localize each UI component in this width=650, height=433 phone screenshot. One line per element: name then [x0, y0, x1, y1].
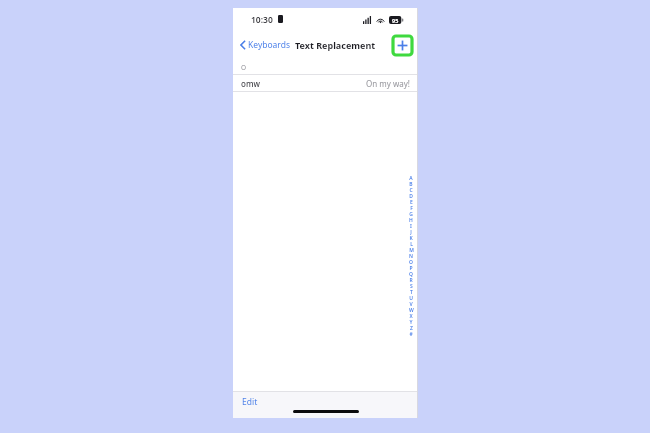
staticText: D [409, 193, 413, 199]
staticText: N [409, 253, 413, 259]
staticText: 95 [392, 17, 399, 24]
staticText: On my way! [366, 78, 410, 89]
staticText: V [409, 301, 413, 307]
staticText: F [410, 205, 413, 211]
staticText: T [410, 289, 413, 295]
staticText: Keyboards [248, 39, 290, 51]
staticText: Y [409, 319, 413, 325]
button[interactable]: omw [233, 75, 418, 92]
staticText: # [409, 331, 413, 337]
staticText: Text Replacement [295, 39, 376, 51]
button[interactable]: Add text replacement [393, 36, 412, 55]
staticText: X [409, 313, 413, 319]
button[interactable]: Keyboards [238, 36, 292, 54]
staticText: O [409, 259, 413, 265]
staticText: 10:30 [251, 14, 273, 26]
staticText: E [410, 199, 413, 205]
staticText: I [410, 223, 412, 229]
staticText: G [409, 211, 413, 217]
staticText: B [409, 181, 413, 187]
staticText: omw [241, 78, 260, 89]
staticText: A [409, 175, 413, 181]
staticText: U [409, 295, 413, 301]
staticText: P [409, 265, 413, 271]
staticText: L [410, 241, 413, 247]
staticText: R [409, 277, 413, 283]
button[interactable]: Section index [407, 175, 415, 337]
staticText: Z [410, 325, 413, 331]
staticText: H [409, 217, 413, 223]
staticText: J [410, 229, 412, 235]
staticText: W [409, 307, 414, 313]
staticText: C [409, 187, 413, 193]
staticText: Q [409, 271, 413, 277]
staticText: K [409, 235, 413, 241]
staticText: O [241, 63, 247, 72]
button[interactable]: Edit [239, 395, 261, 409]
staticText: M [409, 247, 414, 253]
staticText: S [410, 283, 413, 289]
